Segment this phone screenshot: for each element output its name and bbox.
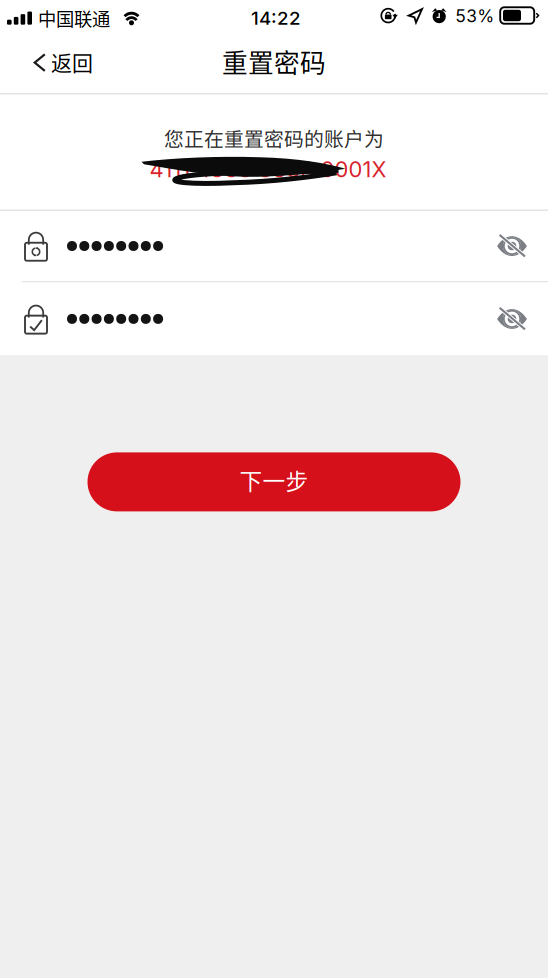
staticText: 重置密码 bbox=[222, 43, 326, 80]
staticText: 14:22 bbox=[251, 7, 301, 29]
button[interactable]: Show new password bbox=[476, 211, 548, 281]
staticText: 4111 4888 8888 0001X bbox=[149, 156, 386, 183]
staticText: 返回 bbox=[51, 46, 93, 77]
staticText: 中国联通 bbox=[38, 5, 110, 31]
button[interactable]: Show confirm password bbox=[476, 282, 548, 355]
staticText: 53% bbox=[455, 5, 494, 26]
button[interactable]: 返回 bbox=[0, 36, 113, 93]
button[interactable]: 下一步 bbox=[87, 452, 460, 511]
staticText: 下一步 bbox=[239, 463, 308, 496]
staticText: 您正在重置密码的账户为 bbox=[164, 124, 384, 152]
